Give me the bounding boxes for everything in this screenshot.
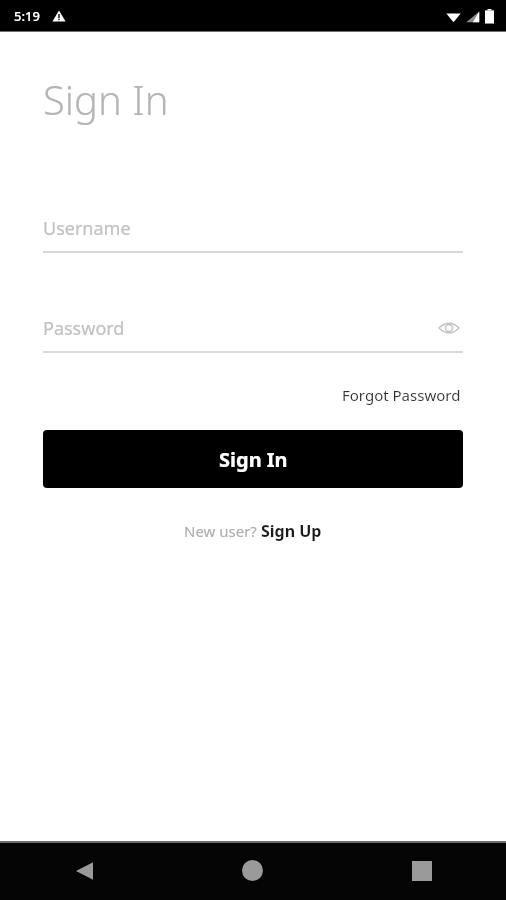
button[interactable]: Back — [0, 841, 168, 900]
button[interactable]: Recents — [337, 841, 506, 900]
button[interactable]: Show password — [435, 314, 463, 342]
button[interactable]: Home — [168, 841, 337, 900]
staticText: Sign In — [43, 72, 169, 126]
staticText: Sign In — [219, 446, 288, 473]
staticText: 5:19 — [14, 7, 40, 25]
staticText: New user? — [184, 521, 261, 541]
staticText: Username — [43, 216, 131, 241]
button[interactable]: Password — [43, 311, 463, 353]
button[interactable]: Sign Up — [261, 520, 322, 542]
button[interactable]: Sign In — [43, 430, 463, 488]
staticText: Password — [43, 316, 125, 341]
button[interactable]: Username — [43, 211, 463, 253]
button[interactable]: Forgot Password — [340, 383, 463, 407]
